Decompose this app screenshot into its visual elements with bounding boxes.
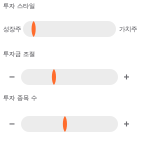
button[interactable]: 성장주 [3,21,137,37]
button[interactable] [3,116,135,132]
staticText: 투자 종목 수 [3,94,37,102]
staticText: 투자 스타일 [3,2,35,10]
staticText: 투자금 조절 [3,50,35,58]
staticText: 성장주 [3,25,21,33]
staticText: 가치주 [119,25,137,33]
button[interactable] [3,69,135,85]
